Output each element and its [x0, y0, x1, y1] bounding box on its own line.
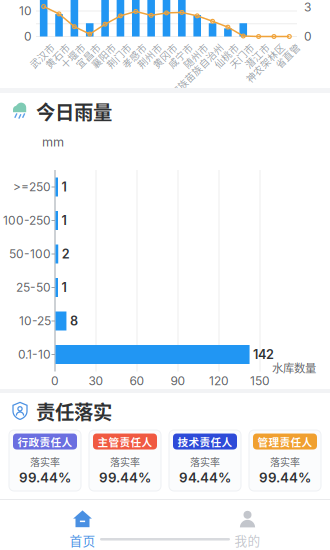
- staticText: 首页: [69, 531, 95, 549]
- staticText: 0: [51, 374, 59, 388]
- staticText: 天门市: [218, 39, 248, 53]
- staticText: 行政责任人: [17, 434, 72, 449]
- staticText: 我的: [234, 531, 260, 549]
- staticText: 潜江市: [234, 39, 264, 53]
- staticText: 孝感市: [111, 39, 141, 53]
- staticText: 责任落实: [36, 397, 112, 425]
- staticText: 技术责任人: [177, 434, 232, 449]
- staticText: 94.44%: [179, 469, 231, 486]
- staticText: 25-50: [16, 280, 51, 295]
- button[interactable]: 我的: [165, 499, 330, 550]
- staticText: 仙桃市: [203, 39, 233, 53]
- staticText: 10-25: [19, 314, 51, 328]
- staticText: >=250: [13, 180, 51, 194]
- button[interactable]: 技术责任人: [169, 430, 241, 491]
- staticText: 1: [61, 213, 66, 228]
- staticText: 神农架林区: [229, 39, 279, 53]
- staticText: 8: [70, 313, 78, 329]
- staticText: 120: [209, 374, 229, 388]
- staticText: 142: [253, 347, 274, 362]
- staticText: 黄石市: [34, 39, 64, 53]
- staticText: 今日雨量: [36, 97, 112, 125]
- staticText: mm: [42, 134, 64, 150]
- staticText: 2: [62, 246, 70, 262]
- staticText: 荆门市: [95, 39, 125, 53]
- staticText: 十堰市: [49, 39, 79, 53]
- staticText: 100-250: [3, 213, 51, 228]
- staticText: 落实率: [110, 454, 140, 469]
- staticText: 60: [129, 374, 144, 388]
- staticText: 主管责任人: [97, 434, 152, 449]
- staticText: 武汉市: [19, 39, 49, 53]
- button[interactable]: 管理责任人: [249, 430, 321, 491]
- staticText: 0: [304, 29, 312, 44]
- staticText: 0: [24, 29, 32, 44]
- button[interactable]: 行政责任人: [9, 430, 81, 491]
- staticText: 恩施土家族苗族自治州: [118, 39, 218, 53]
- staticText: 咸宁市: [157, 39, 187, 53]
- staticText: 0.1-10: [18, 347, 51, 362]
- staticText: 水库数量: [272, 359, 316, 376]
- staticText: 30: [88, 374, 103, 388]
- staticText: 99.44%: [19, 469, 71, 486]
- staticText: 50-100: [9, 247, 51, 261]
- staticText: 襄阳市: [80, 39, 110, 53]
- staticText: 10: [19, 4, 32, 18]
- staticText: 黄冈市: [141, 39, 171, 53]
- staticText: 3: [304, 0, 311, 14]
- staticText: 99.44%: [99, 469, 151, 486]
- staticText: 管理责任人: [257, 434, 312, 449]
- staticText: 落实率: [190, 454, 220, 469]
- staticText: 宜昌市: [65, 39, 95, 53]
- staticText: 1: [61, 179, 66, 195]
- staticText: 1: [61, 280, 66, 295]
- staticText: 随州市: [172, 39, 202, 53]
- button[interactable]: 首页: [0, 499, 165, 550]
- staticText: 荆州市: [126, 39, 156, 53]
- staticText: 150: [250, 374, 270, 388]
- staticText: 省直管: [264, 39, 294, 53]
- button[interactable]: 主管责任人: [89, 430, 161, 491]
- staticText: 99.44%: [259, 469, 311, 486]
- staticText: 落实率: [270, 454, 300, 469]
- staticText: 落实率: [30, 454, 60, 469]
- staticText: 90: [170, 374, 185, 388]
